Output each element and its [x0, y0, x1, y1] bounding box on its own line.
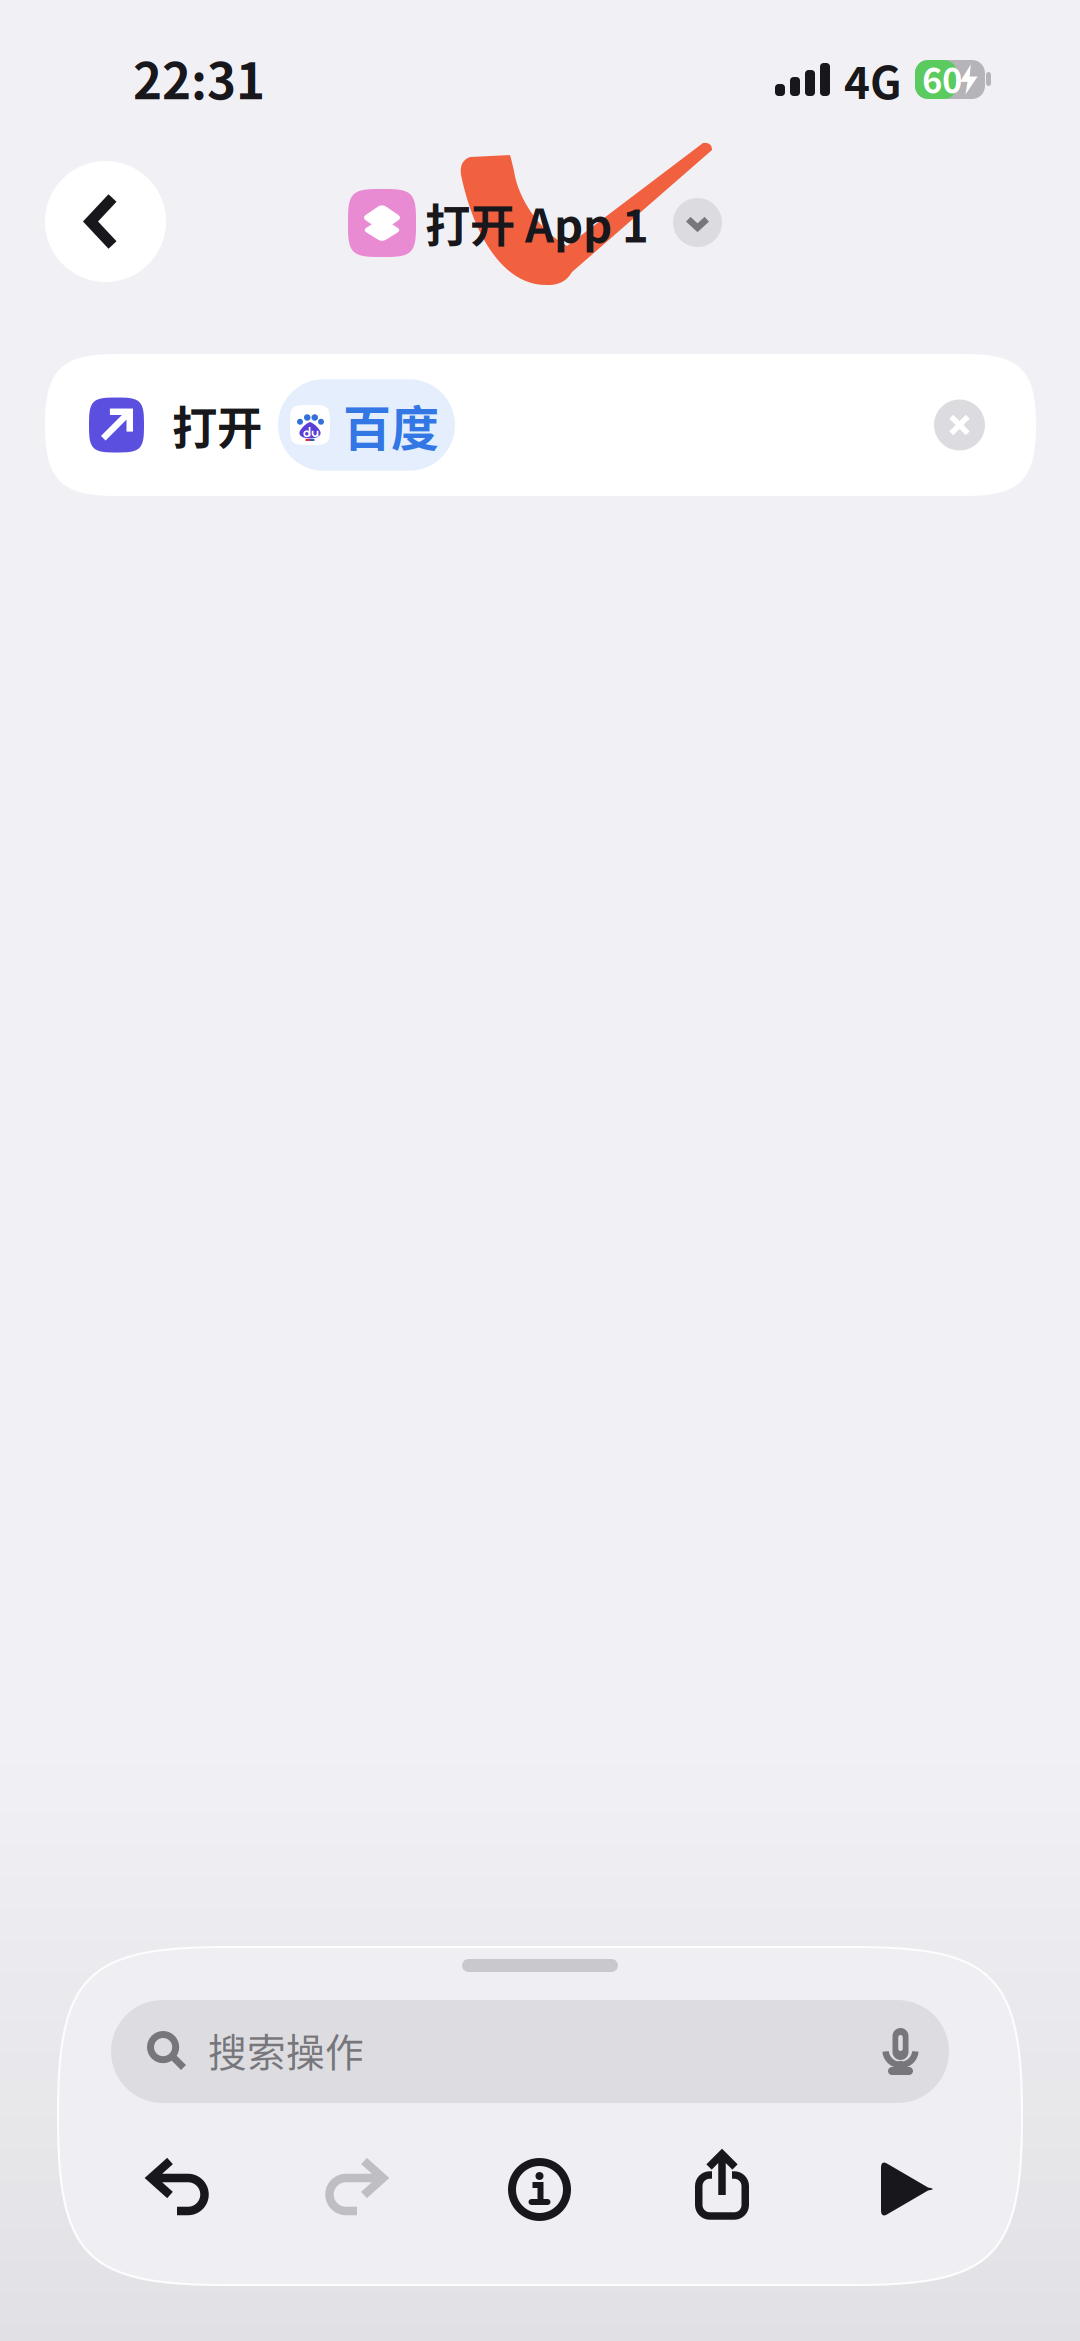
button[interactable]: 返回	[45, 161, 166, 282]
staticText: 60	[922, 53, 962, 104]
button[interactable]: 打开	[45, 354, 1036, 496]
button[interactable]: 移除	[934, 399, 985, 450]
button[interactable]: 重做	[328, 2157, 388, 2217]
staticText: 打开 App 1	[425, 190, 649, 256]
button[interactable]: 共享	[695, 2150, 749, 2220]
staticText: 百度	[343, 390, 439, 460]
button[interactable]: 更多选项	[673, 198, 722, 247]
staticText: 打开	[172, 392, 262, 458]
button[interactable]: 运行	[881, 2160, 933, 2218]
button[interactable]: 信息	[508, 2158, 571, 2221]
staticText: 搜索操作	[208, 2022, 364, 2078]
staticText: 4G	[844, 48, 902, 112]
staticText: 22:31	[133, 42, 265, 113]
button[interactable]: 撤销	[146, 2157, 206, 2217]
